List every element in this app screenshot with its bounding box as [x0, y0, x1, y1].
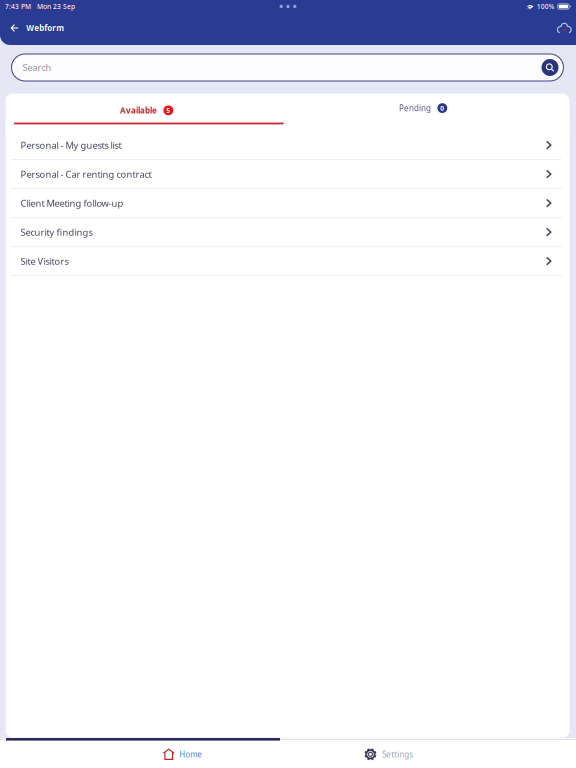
staticText: Home: [179, 749, 202, 760]
staticText: Client Meeting follow-up: [21, 197, 124, 209]
staticText: Available: [120, 105, 157, 116]
button[interactable]: Available: [6, 94, 288, 125]
button[interactable]: Client Meeting follow-up: [6, 189, 570, 218]
button[interactable]: Home: [112, 741, 252, 768]
button[interactable]: Cloud sync: [557, 13, 576, 43]
button[interactable]: Site Visitors: [6, 247, 570, 276]
button[interactable]: Settings: [319, 741, 459, 768]
button[interactable]: Search: [539, 57, 560, 78]
staticText: Site Visitors: [21, 255, 69, 267]
button[interactable]: Personal - Car renting contract: [6, 160, 570, 189]
staticText: 5: [166, 106, 170, 115]
staticText: Security findings: [21, 226, 93, 238]
button[interactable]: Pending: [288, 94, 570, 125]
staticText: Settings: [382, 749, 413, 760]
staticText: 0: [440, 104, 444, 113]
staticText: Search: [22, 61, 51, 74]
staticText: Personal - My guests list: [21, 139, 122, 151]
staticText: Personal - Car renting contract: [21, 168, 152, 180]
button[interactable]: Security findings: [6, 218, 570, 247]
staticText: Pending: [399, 103, 431, 113]
staticText: 100%: [537, 2, 555, 11]
button[interactable]: Personal - My guests list: [6, 131, 570, 160]
button[interactable]: Webform: [0, 13, 74, 43]
staticText: Webform: [26, 23, 64, 33]
staticText: 7:43 PM Mon 23 Sep: [5, 2, 75, 11]
